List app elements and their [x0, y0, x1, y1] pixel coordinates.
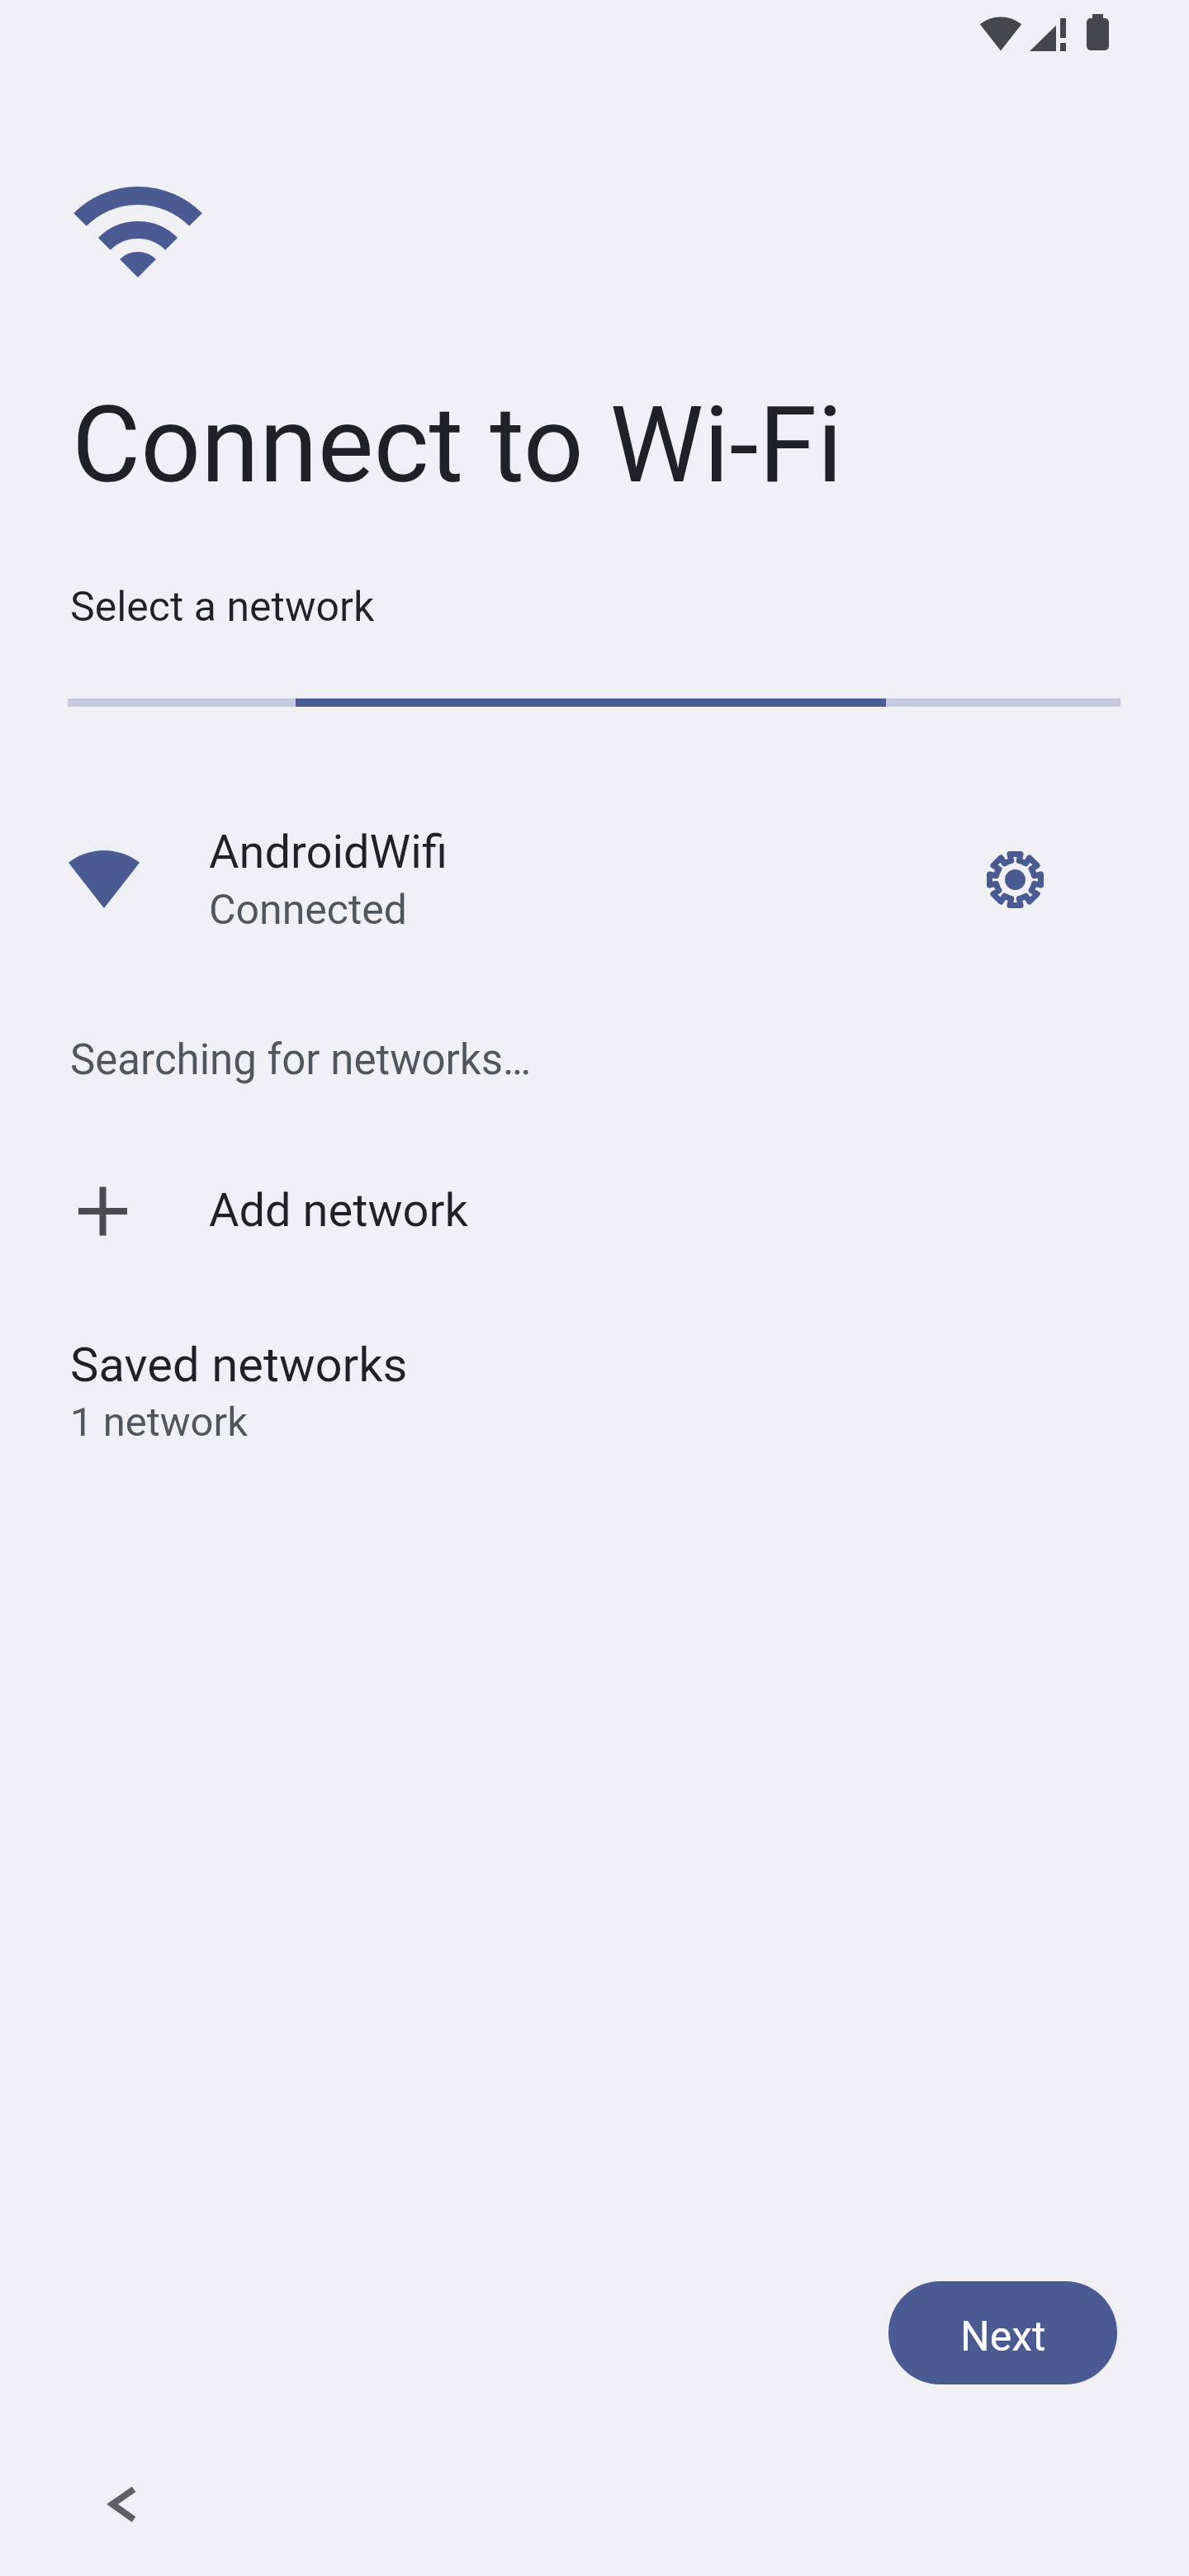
staticText: 1 network: [70, 1399, 248, 1446]
staticText: Next: [960, 2313, 1046, 2361]
button[interactable]: Add network: [0, 1149, 1189, 1273]
button[interactable]: Next: [888, 2281, 1117, 2384]
button[interactable]: [83, 2463, 165, 2545]
staticText: AndroidWifi: [209, 825, 448, 879]
staticText: Searching for networks…: [70, 1035, 532, 1085]
button[interactable]: AndroidWifi: [0, 814, 1189, 946]
button[interactable]: [965, 831, 1064, 930]
staticText: Add network: [209, 1183, 468, 1238]
staticText: Connect to Wi-Fi: [72, 383, 843, 507]
staticText: Connected: [209, 886, 408, 935]
staticText: Select a network: [70, 583, 375, 632]
staticText: Saved networks: [70, 1337, 408, 1393]
